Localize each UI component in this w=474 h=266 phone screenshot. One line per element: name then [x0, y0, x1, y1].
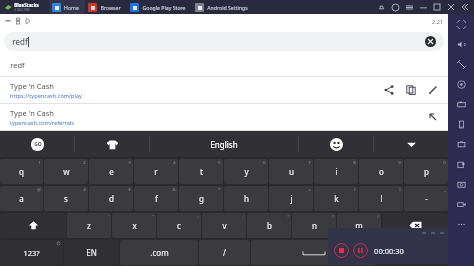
- button[interactable]: f: [134, 186, 178, 211]
- button[interactable]: Minimize: [428, 228, 437, 237]
- button[interactable]: More: [448, 214, 474, 234]
- button[interactable]: Type 'n Cash: [0, 104, 448, 130]
- button[interactable]: n: [292, 213, 336, 238]
- staticText: 7: [308, 160, 311, 166]
- button[interactable]: z: [67, 213, 111, 238]
- button[interactable]: Rotate: [448, 54, 474, 74]
- staticText: d: [109, 193, 114, 204]
- button[interactable]: Keyboard option: [374, 131, 448, 157]
- button[interactable]: Collapse: [458, 0, 472, 14]
- button[interactable]: g: [179, 186, 223, 211]
- staticText: -: [264, 187, 266, 193]
- button[interactable]: v: [202, 213, 246, 238]
- staticText: j: [290, 193, 293, 204]
- button[interactable]: Keyboard option: [0, 131, 74, 157]
- button[interactable]: Google Play Store: [127, 0, 192, 14]
- button[interactable]: Share: [380, 81, 398, 99]
- staticText: *: [218, 187, 221, 193]
- button[interactable]: Android Settings: [192, 0, 254, 14]
- staticText: 123?: [23, 248, 40, 258]
- button[interactable]: c: [157, 213, 201, 238]
- staticText: a: [19, 193, 24, 204]
- button[interactable]: u: [269, 159, 313, 184]
- button[interactable]: t: [179, 159, 223, 184]
- button[interactable]: Pause recording: [353, 243, 368, 258]
- button[interactable]: p: [404, 159, 448, 184]
- button[interactable]: d: [89, 186, 133, 211]
- staticText: s: [64, 193, 68, 204]
- staticText: w: [63, 166, 70, 177]
- button[interactable]: Shift: [0, 213, 66, 238]
- button[interactable]: q: [0, 159, 43, 184]
- button[interactable]: r: [134, 159, 178, 184]
- staticText: :: [197, 214, 199, 220]
- button[interactable]: x: [112, 213, 156, 238]
- button[interactable]: Record: [448, 194, 474, 214]
- button[interactable]: Home: [49, 0, 85, 14]
- staticText: 8: [353, 160, 356, 166]
- button[interactable]: Menu: [402, 0, 416, 14]
- button[interactable]: s: [44, 186, 88, 211]
- staticText: @: [37, 187, 41, 193]
- button[interactable]: Browser: [85, 0, 127, 14]
- button[interactable]: Screenshot: [448, 174, 474, 194]
- button[interactable]: redf: [0, 54, 448, 76]
- button[interactable]: w: [44, 159, 88, 184]
- staticText: t: [200, 166, 203, 177]
- button[interactable]: Copy: [448, 134, 474, 154]
- button[interactable]: 123?: [0, 240, 63, 265]
- staticText: redf: [12, 36, 28, 47]
- button[interactable]: Type 'n Cash: [0, 77, 448, 103]
- staticText: i: [335, 166, 338, 177]
- button[interactable]: .com: [120, 240, 198, 265]
- staticText: /: [377, 214, 379, 220]
- staticText: ): [399, 187, 401, 193]
- button[interactable]: l: [359, 186, 403, 211]
- button[interactable]: /: [199, 240, 250, 265]
- button[interactable]: Close: [437, 228, 446, 237]
- staticText: +: [308, 187, 311, 193]
- button[interactable]: e: [89, 159, 133, 184]
- staticText: h: [244, 193, 249, 204]
- button[interactable]: Keyboard option: [299, 131, 373, 157]
- button[interactable]: Notifications: [374, 0, 388, 14]
- staticText: y: [244, 166, 249, 177]
- button[interactable]: Keyboard option: [75, 131, 149, 157]
- button[interactable]: Stop recording: [334, 243, 349, 258]
- button[interactable]: Minimize: [416, 0, 430, 14]
- button[interactable]: y: [224, 159, 268, 184]
- button[interactable]: i: [314, 159, 358, 184]
- button[interactable]: Fill query: [424, 108, 442, 126]
- button[interactable]: a: [0, 186, 43, 211]
- button[interactable]: Info: [388, 0, 402, 14]
- staticText: f: [155, 193, 158, 204]
- button[interactable]: redf: [4, 32, 444, 51]
- button[interactable]: Close: [444, 0, 458, 14]
- button[interactable]: m: [337, 213, 381, 238]
- button[interactable]: Fullscreen: [448, 14, 474, 34]
- button[interactable]: Share: [448, 154, 474, 174]
- button[interactable]: Backspace: [382, 213, 448, 238]
- staticText: b: [267, 220, 272, 231]
- button[interactable]: Maximize: [430, 0, 444, 14]
- button[interactable]: -: [404, 186, 448, 211]
- staticText: v: [222, 220, 227, 231]
- button[interactable]: Keyboard option: [150, 131, 298, 157]
- button[interactable]: Edit: [424, 81, 442, 99]
- button[interactable]: Clear: [425, 36, 436, 47]
- button[interactable]: o: [359, 159, 403, 184]
- button[interactable]: Resize: [419, 228, 428, 237]
- staticText: Google Play Store: [142, 4, 186, 11]
- button[interactable]: Location: [448, 74, 474, 94]
- staticText: 2:21: [432, 18, 443, 25]
- button[interactable]: b: [247, 213, 291, 238]
- button[interactable]: Volume: [448, 34, 474, 54]
- button[interactable]: Camera: [448, 94, 474, 114]
- button[interactable]: Space: [251, 240, 376, 265]
- button[interactable]: k: [314, 186, 358, 211]
- button[interactable]: Device: [448, 114, 474, 134]
- button[interactable]: Copy: [402, 81, 420, 99]
- button[interactable]: h: [224, 186, 268, 211]
- button[interactable]: EN: [64, 240, 119, 265]
- button[interactable]: j: [269, 186, 313, 211]
